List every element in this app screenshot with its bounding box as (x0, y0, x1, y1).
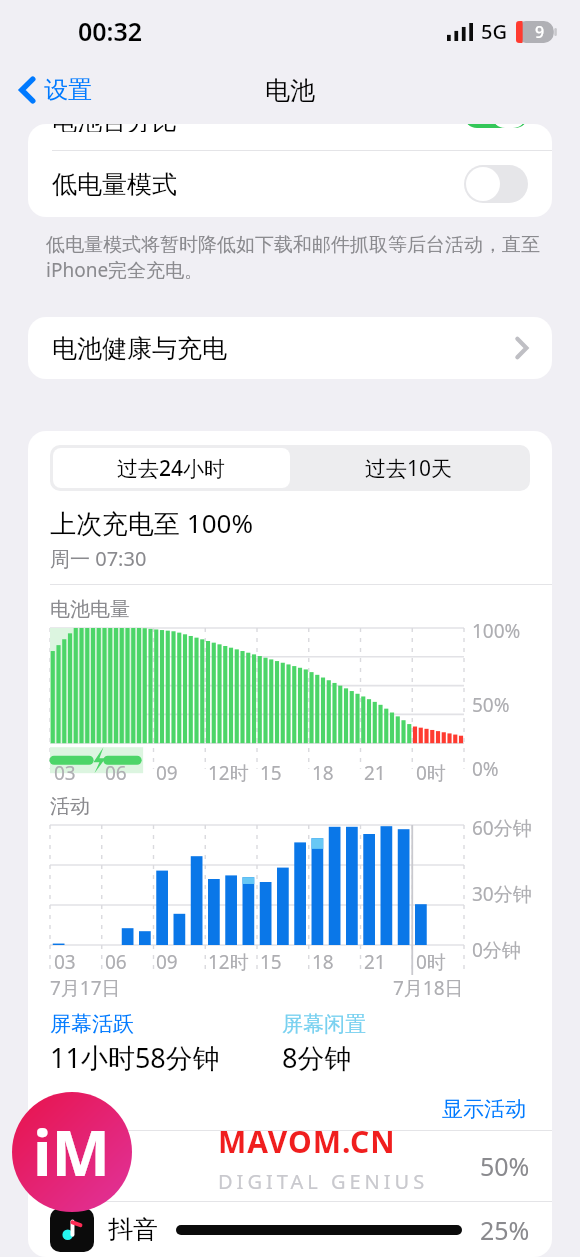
staticText: 50% (480, 1149, 530, 1183)
staticText: 12时 (208, 949, 249, 975)
staticText: 25% (480, 1213, 530, 1247)
staticText: 低电量模式 (52, 169, 177, 200)
staticText: 09 (156, 760, 178, 786)
staticText: 电池 (265, 75, 315, 106)
staticText: 显示活动 (442, 1096, 526, 1122)
staticText: 0时 (416, 949, 446, 975)
staticText: 上次充电至 100% (50, 505, 253, 541)
button[interactable]: 抖音 (28, 1202, 552, 1257)
staticText: 0% (472, 756, 499, 782)
staticText: iM (33, 1110, 111, 1194)
staticText: 06 (105, 949, 127, 975)
staticText: 7月18日 (393, 975, 464, 1001)
staticText: 60分钟 (472, 815, 532, 841)
button[interactable]: 电池健康与充电 (28, 317, 552, 379)
staticText: 21 (364, 760, 386, 786)
staticText: 电池电量 (50, 597, 130, 622)
staticText: 活动 (50, 794, 90, 819)
staticText: 00:32 (78, 14, 143, 48)
staticText: 15 (260, 760, 282, 786)
staticText: 21 (364, 949, 386, 975)
staticText: 18 (312, 949, 334, 975)
button[interactable]: 显示活动 (438, 1092, 530, 1126)
staticText: 低电量模式将暂时降低如下载和邮件抓取等后台活动，直至 (46, 233, 540, 257)
staticText: 过去10天 (365, 454, 453, 483)
staticText: 屏幕闲置 (282, 1011, 366, 1037)
staticText: 9 (535, 21, 545, 41)
button[interactable]: 电池百分比开关 (464, 124, 528, 128)
button[interactable]: 低电量模式 (28, 151, 552, 217)
staticText: 03 (54, 760, 76, 786)
staticText: 03 (54, 949, 76, 975)
staticText: 30分钟 (472, 881, 532, 907)
button[interactable]: 50% (28, 1131, 552, 1201)
staticText: MAVOM.CN (218, 1121, 396, 1162)
staticText: 0分钟 (472, 937, 521, 963)
staticText: 100% (472, 618, 521, 644)
staticText: 7月17日 (50, 975, 121, 1001)
staticText: 0时 (416, 760, 446, 786)
staticText: 12时 (208, 760, 249, 786)
staticText: DIGITAL GENIUS (218, 1168, 429, 1195)
button[interactable]: 过去10天 (290, 448, 527, 488)
staticText: 15 (260, 949, 282, 975)
staticText: 18 (312, 760, 334, 786)
staticText: iPhone完全充电。 (46, 257, 204, 283)
staticText: 5G (481, 18, 507, 45)
staticText: 屏幕活跃 (50, 1011, 134, 1037)
button[interactable]: 设置 (14, 71, 98, 109)
staticText: 8分钟 (282, 1039, 352, 1076)
staticText: 50% (472, 692, 510, 718)
staticText: 09 (156, 949, 178, 975)
staticText: 过去24小时 (117, 454, 226, 483)
staticText: 06 (105, 760, 127, 786)
staticText: 抖音 (108, 1214, 158, 1245)
staticText: 周一 07:30 (50, 545, 147, 572)
staticText: 电池百分比 (52, 124, 177, 132)
staticText: 设置 (44, 75, 92, 105)
staticText: 电池健康与充电 (52, 333, 227, 364)
staticText: 11小时58分钟 (50, 1039, 220, 1076)
button[interactable]: 过去24小时 (53, 448, 290, 488)
